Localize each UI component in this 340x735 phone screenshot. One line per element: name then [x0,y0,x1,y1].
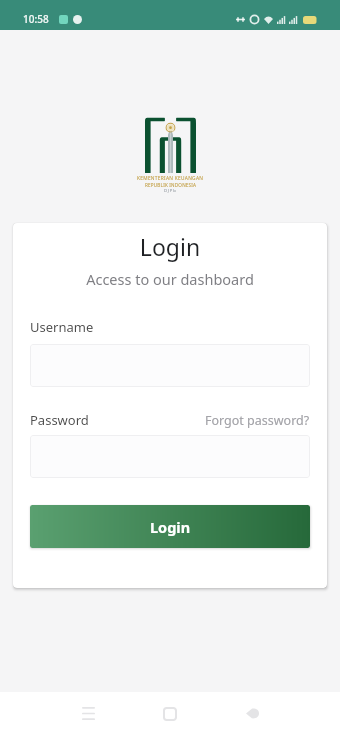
button[interactable]: Back [230,692,274,735]
staticText: Login [150,517,191,537]
staticText: 10:58 [23,12,49,26]
button[interactable]: Recent apps [66,692,110,735]
staticText: Access to our dashboard [30,269,310,289]
button[interactable]: Forgot password? [205,412,310,429]
staticText: Password [30,411,89,429]
staticText: REPUBLIK INDONESIA [145,182,197,188]
staticText: KEMENTERIAN KEUANGAN [137,175,204,182]
staticText: Login [30,231,310,262]
staticText: DJPb [164,188,177,194]
staticText: Username [30,318,94,336]
button[interactable]: Home [148,692,192,735]
button[interactable]: Login [30,505,310,548]
